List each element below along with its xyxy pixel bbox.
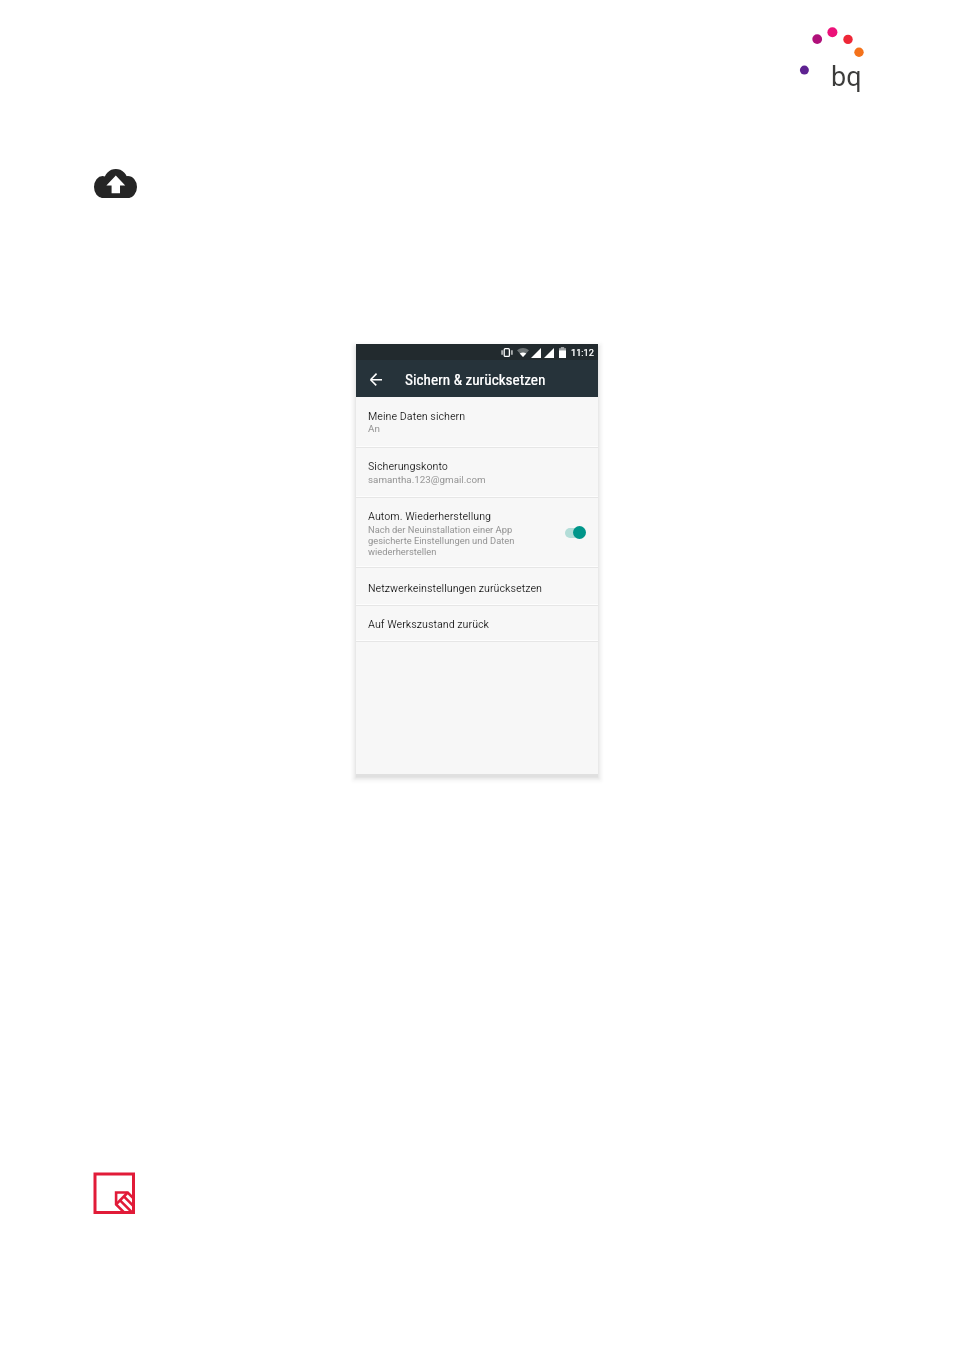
button[interactable]: Edit [92,1171,137,1216]
button[interactable]: Cloud backup [94,169,137,198]
button[interactable]: Back [362,366,384,391]
button[interactable]: Auf Werkszustand zurück [356,605,598,641]
button[interactable]: bq [797,24,873,100]
staticText: bq [831,61,862,93]
staticText: 11:12 [571,347,594,358]
staticText: An [368,423,380,434]
staticText: Meine Daten sichern [368,410,466,423]
button[interactable]: Sicherungskonto [356,447,598,497]
staticText: Netzwerkeinstellungen zurücksetzen [368,582,542,595]
button[interactable]: Meine Daten sichern [356,397,598,447]
staticText: Sicherungskonto [368,460,448,473]
button[interactable]: Netzwerkeinstellungen zurücksetzen [356,567,598,605]
staticText: Sichern & zurücksetzen [405,371,546,389]
button[interactable]: Autom. Wiederherstellung [356,497,598,567]
staticText: Autom. Wiederherstellung [368,510,492,523]
staticText: Nach der Neuinstallation einer App gesic… [368,524,525,557]
staticText: samantha.123@gmail.com [368,474,486,485]
staticText: Auf Werkszustand zurück [368,618,490,631]
